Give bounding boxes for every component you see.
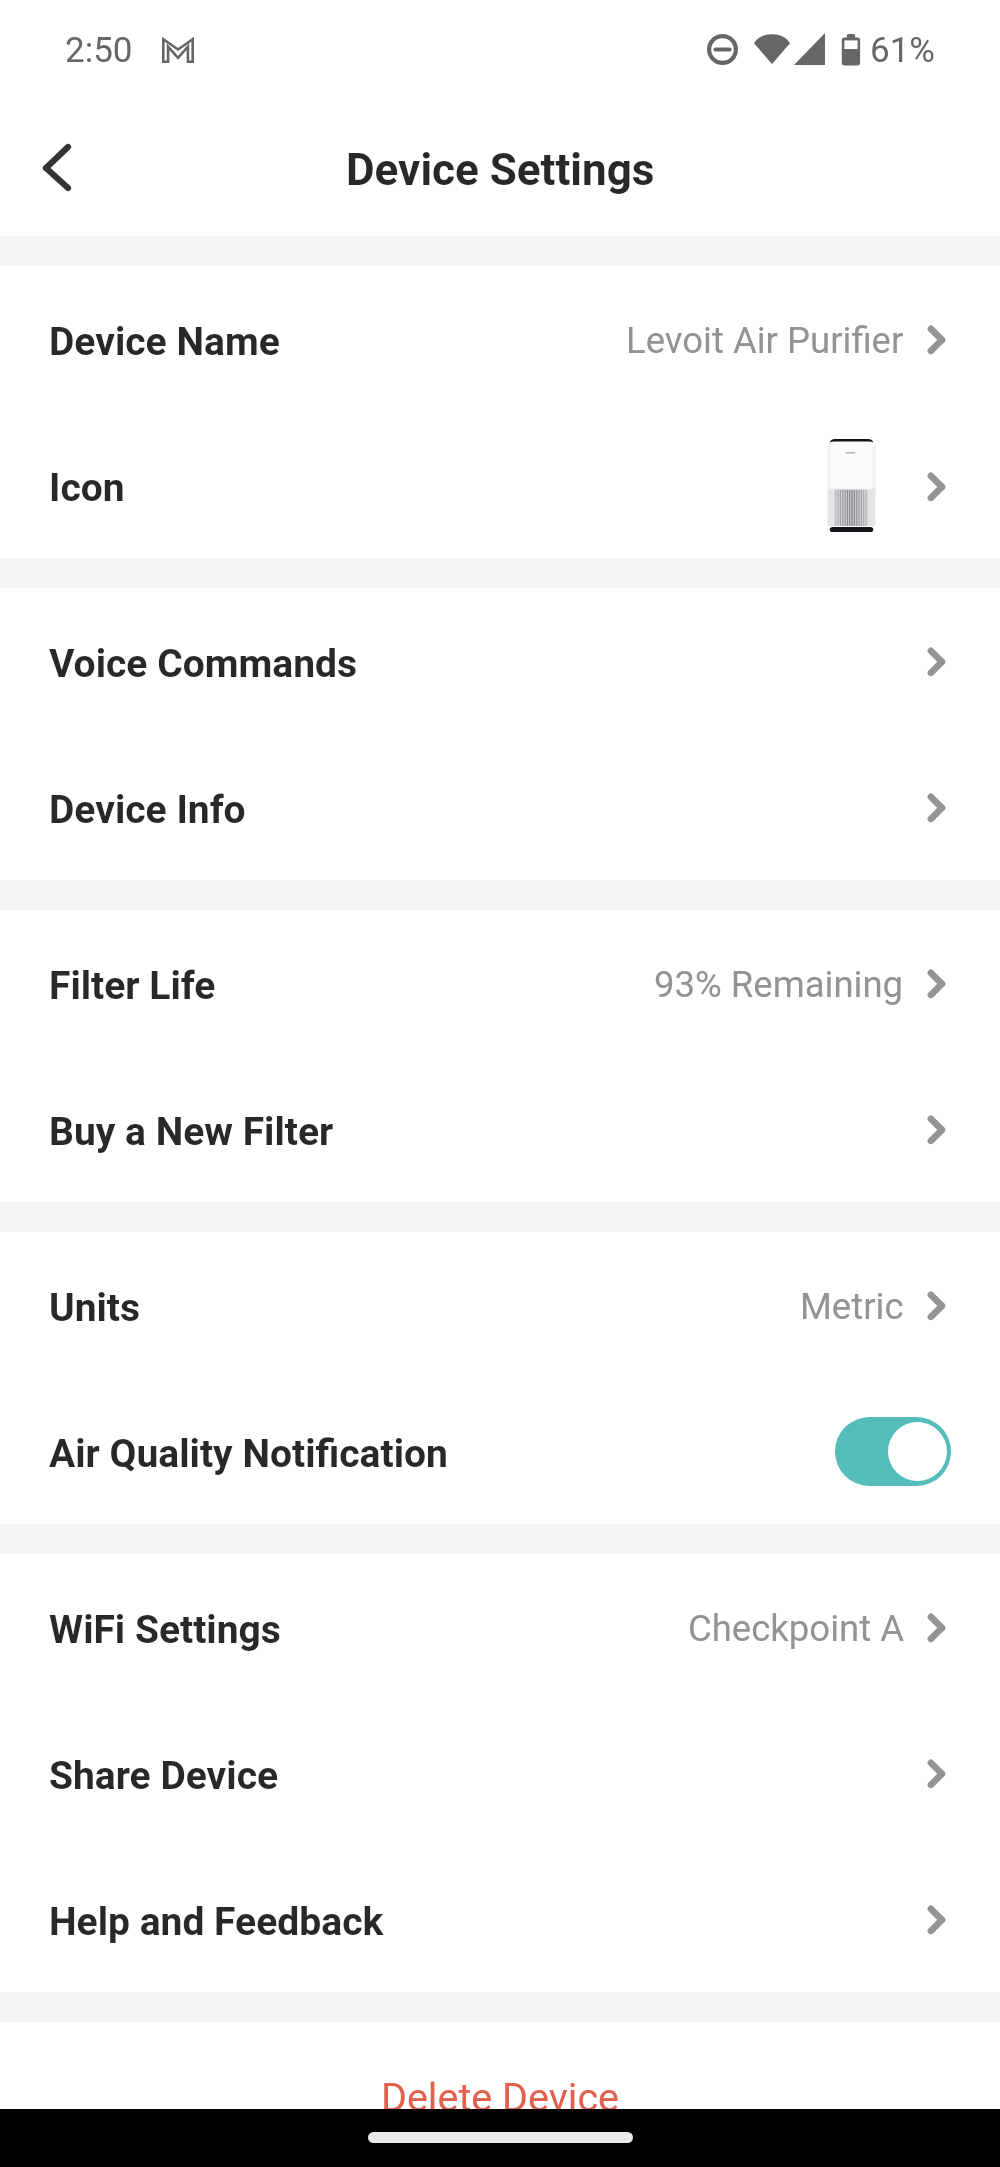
button[interactable]: Voice Commands bbox=[0, 588, 1000, 734]
button[interactable]: Air Quality Notification bbox=[0, 1378, 1000, 1524]
button[interactable]: Back bbox=[10, 124, 94, 208]
button[interactable]: WiFi Settings bbox=[0, 1554, 1000, 1700]
staticText: Air Quality Notification bbox=[49, 1431, 448, 1477]
staticText: Share Device bbox=[49, 1753, 279, 1799]
staticText: Voice Commands bbox=[49, 641, 358, 687]
staticText: Filter Life bbox=[49, 963, 216, 1009]
button[interactable]: Device Info bbox=[0, 734, 1000, 880]
staticText: Help and Feedback bbox=[49, 1899, 384, 1945]
staticText: 61% bbox=[870, 30, 935, 71]
staticText: 93% Remaining bbox=[654, 963, 904, 1006]
staticText: Buy a New Filter bbox=[49, 1109, 334, 1155]
button[interactable]: Air Quality Notification bbox=[835, 1417, 951, 1486]
button[interactable]: Icon bbox=[0, 412, 1000, 558]
button[interactable]: Units bbox=[0, 1232, 1000, 1378]
button[interactable]: Share Device bbox=[0, 1700, 1000, 1846]
staticText: 2:50 bbox=[65, 30, 133, 71]
staticText: Levoit Air Purifier bbox=[626, 319, 904, 362]
button[interactable]: Delete Device bbox=[0, 2022, 1000, 2109]
staticText: Device Name bbox=[49, 319, 280, 365]
staticText: Metric bbox=[800, 1285, 904, 1328]
button[interactable]: Buy a New Filter bbox=[0, 1056, 1000, 1202]
staticText: Icon bbox=[49, 465, 125, 511]
staticText: Device Info bbox=[49, 787, 246, 833]
button[interactable]: Help and Feedback bbox=[0, 1846, 1000, 1992]
staticText: Checkpoint A bbox=[688, 1607, 904, 1650]
staticText: WiFi Settings bbox=[49, 1607, 281, 1653]
button[interactable]: Filter Life bbox=[0, 910, 1000, 1056]
staticText: Delete Device bbox=[381, 2074, 620, 2109]
button[interactable]: Device Name bbox=[0, 266, 1000, 412]
staticText: Device Settings bbox=[346, 144, 655, 196]
staticText: Units bbox=[49, 1285, 141, 1331]
